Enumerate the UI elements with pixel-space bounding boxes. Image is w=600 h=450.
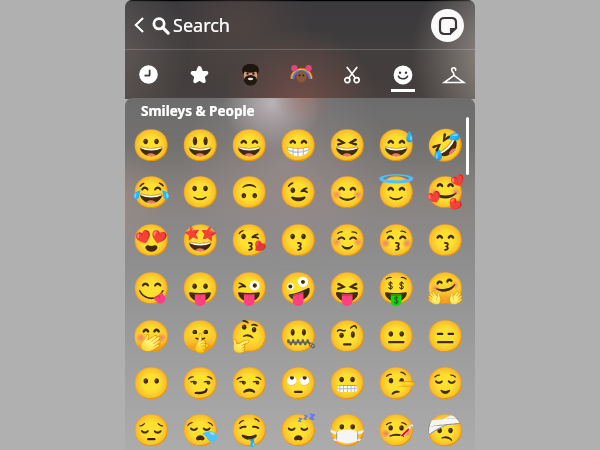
button[interactable]: 😙 <box>421 216 470 264</box>
button[interactable]: Favorites <box>179 50 219 99</box>
button[interactable]: 😂 <box>127 168 176 216</box>
button[interactable]: 🤥 <box>372 359 421 407</box>
staticText: 😂 <box>132 174 171 210</box>
staticText: 🤒 <box>377 412 416 448</box>
button[interactable]: 😷 <box>323 406 372 450</box>
button[interactable]: 😜 <box>225 264 274 312</box>
staticText: 🤑 <box>377 270 416 306</box>
staticText: 😗 <box>279 222 318 258</box>
staticText: 🤩 <box>181 222 220 258</box>
button[interactable]: ☺️ <box>323 216 372 264</box>
staticText: 😜 <box>230 270 269 306</box>
button[interactable]: 😅 <box>372 121 421 169</box>
staticText: 😪 <box>181 412 220 448</box>
staticText: 🙃 <box>230 174 269 210</box>
button[interactable]: Search <box>152 13 431 38</box>
button[interactable]: 😴 <box>274 406 323 450</box>
staticText: 🤣 <box>426 127 465 163</box>
button[interactable]: 😬 <box>323 359 372 407</box>
button[interactable]: 🤕 <box>421 406 470 450</box>
staticText: 😀 <box>132 127 171 163</box>
button[interactable]: 🙂 <box>176 168 225 216</box>
button[interactable]: 🤪 <box>274 264 323 312</box>
button[interactable]: 😗 <box>274 216 323 264</box>
button[interactable]: Friendmoji <box>281 50 321 99</box>
button[interactable]: 😒 <box>225 359 274 407</box>
button[interactable]: 😑 <box>421 312 470 360</box>
staticText: 😙 <box>426 222 465 258</box>
staticText: 😉 <box>279 174 318 210</box>
staticText: 🤗 <box>426 270 465 306</box>
button[interactable]: 🤨 <box>323 312 372 360</box>
staticText: 😘 <box>230 222 269 258</box>
button[interactable]: 😛 <box>176 264 225 312</box>
staticText: 🤫 <box>181 318 220 354</box>
button[interactable]: 😐 <box>372 312 421 360</box>
button[interactable]: 🤗 <box>421 264 470 312</box>
button[interactable]: 😋 <box>127 264 176 312</box>
button[interactable]: 😚 <box>372 216 421 264</box>
button[interactable]: Outfits <box>434 50 474 99</box>
button[interactable]: Back <box>128 14 150 36</box>
button[interactable]: 😔 <box>127 406 176 450</box>
button[interactable]: 🤤 <box>225 406 274 450</box>
button[interactable]: 🤐 <box>274 312 323 360</box>
button[interactable]: 😍 <box>127 216 176 264</box>
staticText: 😁 <box>279 127 318 163</box>
staticText: 🤔 <box>230 318 269 354</box>
button[interactable]: 🤩 <box>176 216 225 264</box>
staticText: 😄 <box>230 127 269 163</box>
button[interactable]: 😁 <box>274 121 323 169</box>
staticText: 😃 <box>181 127 220 163</box>
staticText: 😒 <box>230 365 269 401</box>
staticText: 🤭 <box>132 318 171 354</box>
staticText: 🤥 <box>377 365 416 401</box>
button[interactable]: 🤭 <box>127 312 176 360</box>
button[interactable]: 😇 <box>372 168 421 216</box>
button[interactable]: 😆 <box>323 121 372 169</box>
button[interactable]: 🙃 <box>225 168 274 216</box>
button[interactable]: Emoji <box>383 50 423 99</box>
button[interactable]: Recent <box>128 50 168 99</box>
staticText: 😝 <box>328 270 367 306</box>
button[interactable]: 😘 <box>225 216 274 264</box>
button[interactable]: Cutouts <box>332 50 372 99</box>
staticText: 😛 <box>181 270 220 306</box>
button[interactable]: 😝 <box>323 264 372 312</box>
button[interactable]: 🤣 <box>421 121 470 169</box>
staticText: 😚 <box>377 222 416 258</box>
staticText: 😔 <box>132 412 171 448</box>
staticText: 😍 <box>132 222 171 258</box>
button[interactable]: 🤒 <box>372 406 421 450</box>
button[interactable]: 🤫 <box>176 312 225 360</box>
staticText: ☺️ <box>328 222 367 258</box>
button[interactable]: 🙄 <box>274 359 323 407</box>
button[interactable]: Bitmoji <box>230 50 270 99</box>
button[interactable]: 😄 <box>225 121 274 169</box>
button[interactable]: 🥰 <box>421 168 470 216</box>
staticText: 🤤 <box>230 412 269 448</box>
staticText: 😶 <box>132 365 171 401</box>
staticText: 😐 <box>377 318 416 354</box>
button[interactable]: 😶 <box>127 359 176 407</box>
staticText: 🤨 <box>328 318 367 354</box>
staticText: 🥰 <box>426 174 465 210</box>
button[interactable]: 😪 <box>176 406 225 450</box>
button[interactable]: 😃 <box>176 121 225 169</box>
button[interactable]: 😌 <box>421 359 470 407</box>
staticText: 🤐 <box>279 318 318 354</box>
staticText: 😴 <box>279 412 318 448</box>
button[interactable]: 😀 <box>127 121 176 169</box>
staticText: Search <box>173 13 230 38</box>
staticText: 😋 <box>132 270 171 306</box>
button[interactable]: 🤑 <box>372 264 421 312</box>
button[interactable]: 😉 <box>274 168 323 216</box>
staticText: Smileys & People <box>141 102 255 120</box>
staticText: 🤕 <box>426 412 465 448</box>
button[interactable]: Stickers <box>431 9 464 42</box>
button[interactable]: 😊 <box>323 168 372 216</box>
staticText: 😇 <box>377 174 416 210</box>
button[interactable]: 🤔 <box>225 312 274 360</box>
staticText: 😏 <box>181 365 220 401</box>
button[interactable]: 😏 <box>176 359 225 407</box>
